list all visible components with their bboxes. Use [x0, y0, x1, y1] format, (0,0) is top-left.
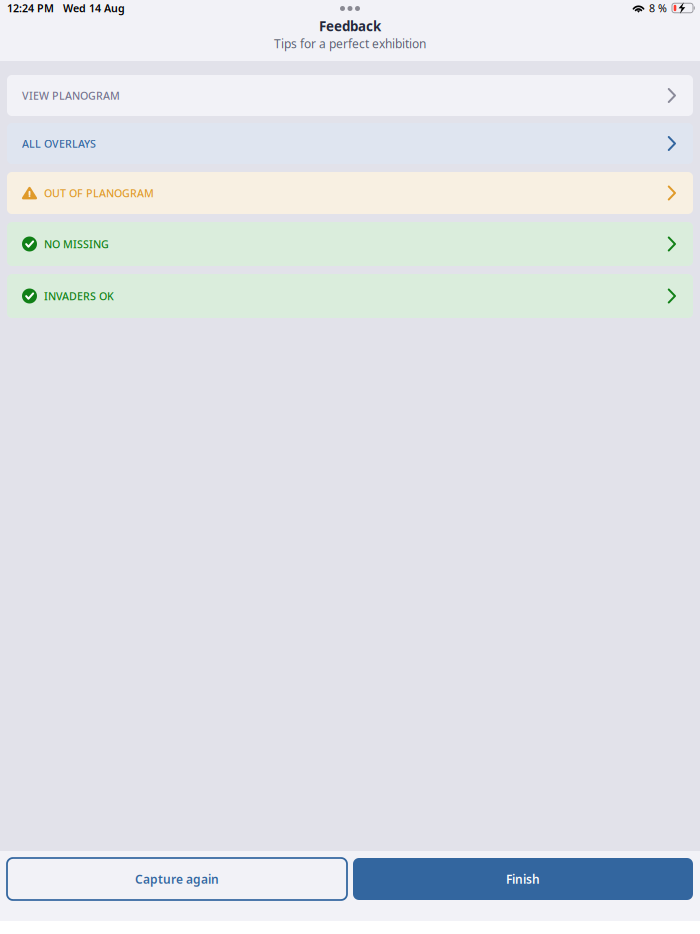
staticText: Finish	[506, 871, 540, 887]
staticText: Feedback	[319, 17, 381, 35]
staticText: VIEW PLANOGRAM	[22, 88, 120, 103]
button[interactable]: OUT OF PLANOGRAM	[7, 172, 693, 214]
staticText: OUT OF PLANOGRAM	[44, 186, 154, 200]
button[interactable]: NO MISSING	[7, 222, 693, 266]
button[interactable]: ALL OVERLAYS	[7, 123, 693, 164]
staticText: Tips for a perfect exhibition	[274, 35, 426, 51]
staticText: NO MISSING	[44, 237, 109, 251]
button[interactable]: Finish	[353, 858, 693, 900]
staticText: 8 %	[649, 1, 667, 15]
staticText: ALL OVERLAYS	[22, 136, 96, 151]
button[interactable]: INVADERS OK	[7, 274, 693, 318]
staticText: INVADERS OK	[44, 289, 114, 303]
staticText: Capture again	[135, 871, 219, 887]
staticText: 12:24 PM	[7, 1, 54, 15]
button[interactable]: VIEW PLANOGRAM	[7, 75, 693, 116]
button[interactable]: Capture again	[7, 858, 347, 900]
staticText: Wed 14 Aug	[63, 1, 125, 15]
